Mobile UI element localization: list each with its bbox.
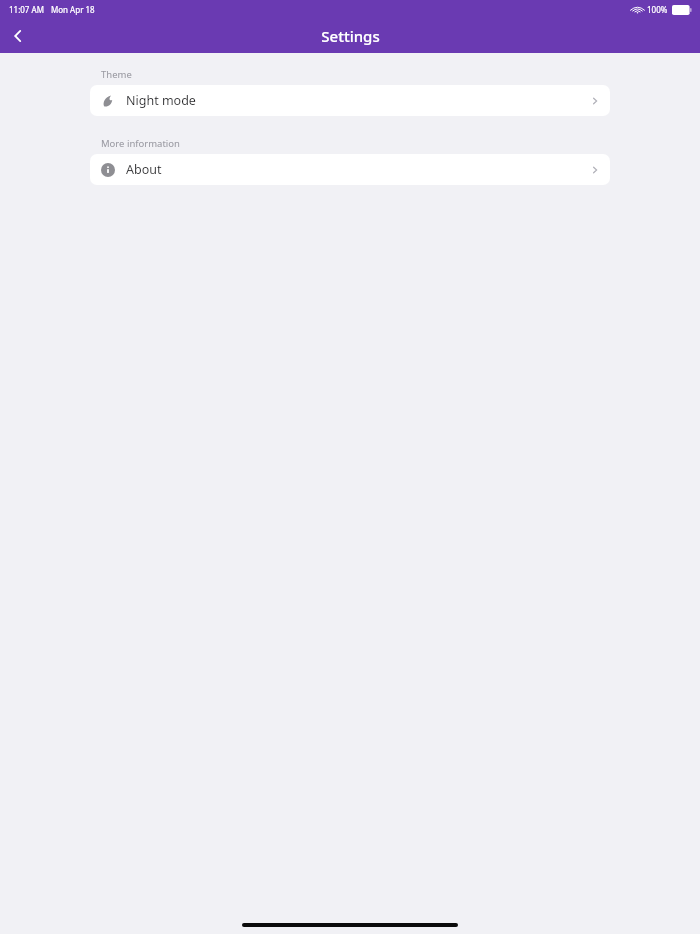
staticText: More information xyxy=(101,137,180,150)
staticText: Theme xyxy=(101,68,132,81)
button[interactable]: Night mode xyxy=(90,85,610,116)
staticText: Settings xyxy=(321,26,380,46)
staticText: 100% xyxy=(647,4,668,15)
staticText: 11:07 AM xyxy=(9,4,44,15)
button[interactable]: Back xyxy=(0,18,36,53)
staticText: Night mode xyxy=(126,92,196,109)
button[interactable]: About xyxy=(90,154,610,185)
staticText: Mon Apr 18 xyxy=(51,4,95,15)
staticText: About xyxy=(126,161,162,178)
